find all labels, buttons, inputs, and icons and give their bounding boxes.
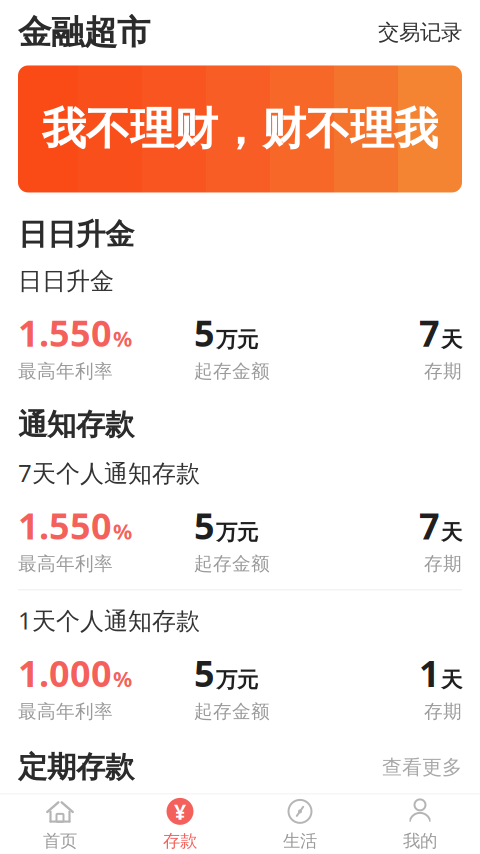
button[interactable]: 交易记录 xyxy=(364,13,462,52)
staticText: 万元 xyxy=(216,327,258,353)
staticText: 1.550 xyxy=(18,309,112,357)
staticText: 5 xyxy=(194,649,215,697)
button[interactable]: 查看更多 xyxy=(370,749,462,786)
staticText: 最高年利率 xyxy=(18,700,113,723)
staticText: 天 xyxy=(441,667,462,693)
button[interactable]: 生活 xyxy=(240,795,360,853)
staticText: 1天个人通知存款 xyxy=(18,604,200,636)
staticText: 交易记录 xyxy=(378,19,462,46)
staticText: 天 xyxy=(441,327,462,353)
staticText: 通知存款 xyxy=(18,407,134,443)
staticText: 我的 xyxy=(403,830,437,852)
staticText: 最高年利率 xyxy=(18,360,113,383)
staticText: 查看更多 xyxy=(382,755,462,780)
staticText: 日日升金 xyxy=(18,216,134,252)
button[interactable]: 我的 xyxy=(360,795,480,853)
button[interactable]: 首页 xyxy=(0,795,120,853)
button[interactable]: 日日升金 xyxy=(18,252,462,397)
staticText: 天 xyxy=(441,519,462,545)
staticText: ¥ xyxy=(174,797,186,825)
button[interactable]: ¥ xyxy=(120,795,240,853)
staticText: 存期 xyxy=(424,552,462,575)
staticText: 1.550 xyxy=(18,502,112,549)
staticText: 7 xyxy=(419,309,440,357)
staticText: 首页 xyxy=(43,830,77,852)
staticText: 最高年利率 xyxy=(18,552,113,575)
staticText: 存款 xyxy=(163,830,197,852)
staticText: 1 xyxy=(419,649,440,697)
staticText: 7 xyxy=(419,502,440,549)
staticText: 存期 xyxy=(424,700,462,723)
staticText: % xyxy=(113,324,132,353)
staticText: 日日升金 xyxy=(18,266,114,296)
staticText: 1.000 xyxy=(18,649,112,697)
button[interactable]: 我不理财，财不理我 xyxy=(18,65,462,192)
staticText: 起存金额 xyxy=(194,360,270,383)
staticText: 5 xyxy=(194,309,215,357)
button[interactable]: 7天个人通知存款 xyxy=(18,443,462,589)
staticText: 定期存款 xyxy=(18,749,134,785)
staticText: 万元 xyxy=(216,519,258,545)
staticText: 我不理财，财不理我 xyxy=(42,102,438,156)
staticText: 生活 xyxy=(283,830,317,852)
staticText: 万元 xyxy=(216,667,258,693)
staticText: 起存金额 xyxy=(194,700,270,723)
button[interactable]: 1天个人通知存款 xyxy=(18,590,462,737)
staticText: 金融超市 xyxy=(18,12,150,53)
staticText: % xyxy=(113,517,132,545)
staticText: 5 xyxy=(194,502,215,549)
staticText: 起存金额 xyxy=(194,552,270,575)
staticText: 7天个人通知存款 xyxy=(18,457,200,489)
staticText: % xyxy=(113,665,132,693)
staticText: 存期 xyxy=(424,360,462,383)
